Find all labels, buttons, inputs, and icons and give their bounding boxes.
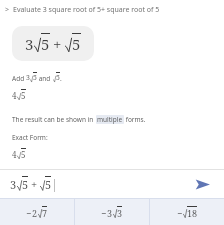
staticText: 4 [12,90,17,101]
staticText: 3 [10,177,17,192]
staticText: 5 [41,34,50,54]
staticText: − [101,207,107,219]
staticText: > [5,5,10,15]
staticText: and [37,74,53,83]
staticText: + [31,177,38,192]
button[interactable]: − [0,199,74,225]
button[interactable]: − [150,199,224,225]
staticText: − [177,207,183,219]
staticText: Decimal Form: [12,168,57,177]
button[interactable]: multiple [96,115,124,124]
staticText: + [53,34,62,54]
staticText: 5 [56,73,60,83]
staticText: Exact Form: [12,133,48,142]
staticText: 5 [22,177,29,192]
staticText: 3 [25,34,34,54]
staticText: 5 [33,73,37,83]
staticText: 3 [26,73,30,83]
staticText: multiple [97,115,123,124]
staticText: 18 [187,207,198,219]
button[interactable]: 3 [0,170,224,198]
staticText: 2 [32,207,38,219]
staticText: Add [12,74,26,83]
staticText: 7 [42,207,48,219]
staticText: Evaluate 3 square root of 5+ square root… [13,5,160,15]
staticText: . [60,74,62,83]
staticText: 4 [12,149,17,160]
staticText: 5 [72,34,81,54]
staticText: − [26,207,32,219]
staticText: The result can be shown in [12,115,96,124]
button[interactable]: Send [190,172,214,196]
staticText: 5 [45,177,52,192]
staticText: forms. [124,115,146,124]
staticText: 3 [107,207,113,219]
staticText: 5 [21,90,26,101]
staticText: 3 [117,207,123,219]
button[interactable]: − [75,199,149,225]
staticText: 5 [21,149,26,160]
